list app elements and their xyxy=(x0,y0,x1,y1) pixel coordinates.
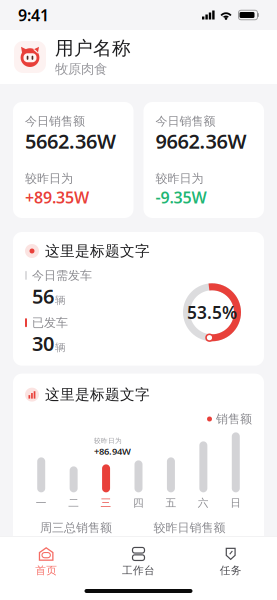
staticText: 六 xyxy=(198,496,209,509)
button[interactable]: 任务 xyxy=(185,541,277,577)
staticText: 销售额 xyxy=(216,412,252,426)
staticText: 9:41 xyxy=(18,4,49,26)
staticText: 今日销售额 xyxy=(155,114,215,129)
staticText: 辆 xyxy=(55,341,66,354)
staticText: 今日销售额 xyxy=(25,114,85,129)
staticText: 较昨日为 xyxy=(94,437,122,445)
staticText: 一 xyxy=(36,496,47,509)
staticText: 首页 xyxy=(35,564,57,577)
staticText: -9.35W xyxy=(155,187,206,208)
staticText: 三 xyxy=(101,496,112,509)
staticText: 较昨日为 xyxy=(155,171,203,186)
staticText: 30 xyxy=(32,330,54,357)
staticText: 较昨日为 xyxy=(25,171,73,186)
staticText: +89.35W xyxy=(25,187,89,208)
staticText: 用户名称 xyxy=(55,37,131,60)
staticText: 较昨日销售额 xyxy=(153,520,225,535)
staticText: +86.94W xyxy=(94,445,131,457)
staticText: 5662.36W xyxy=(25,128,116,154)
staticText: 这里是标题文字 xyxy=(45,386,150,404)
staticText: 今日需发车 xyxy=(32,268,92,283)
staticText: 周三总销售额 xyxy=(40,520,112,535)
staticText: 56 xyxy=(32,283,54,309)
staticText: 四 xyxy=(133,496,144,509)
staticText: 辆 xyxy=(55,294,66,307)
staticText: 任务 xyxy=(220,564,242,577)
staticText: 牧原肉食 xyxy=(55,61,107,77)
button[interactable]: 用户名称 xyxy=(0,30,277,84)
staticText: 已发车 xyxy=(32,315,68,330)
button[interactable]: 首页 xyxy=(0,541,92,577)
staticText: 日 xyxy=(230,496,241,509)
staticText: 工作台 xyxy=(122,564,155,577)
staticText: 五 xyxy=(165,496,176,509)
staticText: 9662.36W xyxy=(155,128,246,154)
staticText: 这里是标题文字 xyxy=(45,242,150,260)
staticText: 53.5% xyxy=(187,301,237,324)
button[interactable]: 工作台 xyxy=(92,541,185,577)
staticText: 二 xyxy=(68,496,79,509)
